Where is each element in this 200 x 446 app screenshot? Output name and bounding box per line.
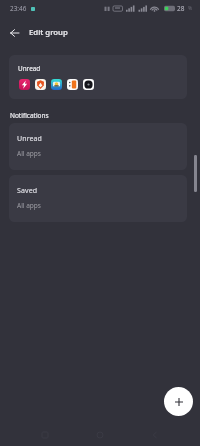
staticText: All apps: [17, 149, 41, 158]
staticText: All apps: [17, 201, 41, 210]
staticText: Unread: [18, 64, 41, 73]
staticText: Saved: [17, 186, 38, 196]
button[interactable]: Add: [164, 387, 193, 416]
staticText: Edit group: [29, 27, 68, 38]
button[interactable]: Saved: [9, 175, 187, 222]
button[interactable]: Unread: [9, 55, 187, 99]
staticText: Notifications: [10, 111, 49, 120]
staticText: %: [188, 5, 193, 12]
button[interactable]: Back: [3, 21, 26, 44]
staticText: 23:46: [10, 4, 27, 13]
staticText: Unread: [17, 134, 42, 144]
button[interactable]: Unread: [9, 123, 187, 170]
staticText: 28: [177, 4, 185, 13]
